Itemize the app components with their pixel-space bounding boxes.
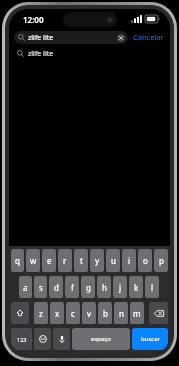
button[interactable]: Dictation	[53, 328, 70, 350]
button[interactable]: a	[19, 276, 32, 298]
staticText: s	[39, 282, 43, 293]
staticText: r	[63, 255, 67, 266]
button[interactable]: k	[129, 276, 143, 298]
staticText: t	[80, 255, 83, 266]
button[interactable]: o	[138, 249, 152, 272]
button[interactable]: Emoji	[34, 328, 51, 350]
staticText: buscar	[141, 335, 160, 343]
button[interactable]: u	[106, 249, 120, 272]
staticText: y	[95, 255, 100, 266]
staticText: f	[71, 282, 74, 293]
button[interactable]: buscar	[132, 328, 168, 350]
button[interactable]: v	[82, 302, 96, 324]
button[interactable]: zlife lite	[14, 31, 128, 44]
staticText: z	[39, 308, 43, 319]
staticText: n	[119, 308, 124, 319]
staticText: q	[15, 255, 20, 266]
staticText: d	[54, 282, 59, 293]
button[interactable]: d	[49, 276, 63, 298]
button[interactable]: p	[154, 249, 168, 272]
button[interactable]: m	[130, 302, 144, 324]
staticText: espaço	[91, 335, 111, 343]
staticText: zlife lite	[28, 49, 54, 59]
staticText: u	[111, 255, 116, 266]
staticText: a	[23, 282, 28, 293]
button[interactable]: q	[11, 249, 24, 272]
staticText: v	[87, 308, 92, 319]
button[interactable]: z	[34, 302, 48, 324]
staticText: g	[86, 282, 91, 293]
button[interactable]: espaço	[72, 328, 130, 350]
staticText: zlife lite	[28, 33, 117, 43]
staticText: p	[159, 255, 164, 266]
staticText: l	[151, 282, 154, 293]
staticText: 12:00	[23, 14, 44, 25]
button[interactable]: y	[90, 249, 104, 272]
staticText: x	[55, 308, 60, 319]
button[interactable]: s	[34, 276, 47, 298]
button[interactable]: e	[42, 249, 56, 272]
button[interactable]: Cancelar	[132, 31, 165, 43]
staticText: c	[71, 308, 75, 319]
staticText: m	[133, 308, 141, 319]
button[interactable]: c	[66, 302, 80, 324]
button[interactable]: l	[145, 276, 159, 298]
staticText: 123	[17, 336, 27, 343]
staticText: i	[128, 255, 131, 266]
button[interactable]: w	[26, 249, 40, 272]
button[interactable]: Delete	[149, 302, 168, 324]
button[interactable]: Clear text	[117, 34, 125, 42]
button[interactable]: r	[58, 249, 72, 272]
staticText: Cancelar	[133, 32, 164, 42]
staticText: h	[102, 282, 107, 293]
staticText: w	[30, 255, 37, 266]
button[interactable]: i	[122, 249, 136, 272]
button[interactable]: Numbers	[11, 328, 32, 350]
button[interactable]: x	[50, 302, 64, 324]
button[interactable]: Shift	[11, 302, 29, 324]
button[interactable]: h	[97, 276, 111, 298]
button[interactable]: j	[113, 276, 127, 298]
button[interactable]: g	[81, 276, 95, 298]
button[interactable]: f	[65, 276, 79, 298]
button[interactable]: n	[114, 302, 128, 324]
button[interactable]: t	[74, 249, 88, 272]
staticText: e	[47, 255, 52, 266]
staticText: j	[119, 282, 122, 293]
button[interactable]: zlife lite	[9, 45, 170, 62]
staticText: k	[134, 282, 139, 293]
button[interactable]: b	[98, 302, 112, 324]
staticText: o	[143, 255, 148, 266]
staticText: b	[103, 308, 108, 319]
